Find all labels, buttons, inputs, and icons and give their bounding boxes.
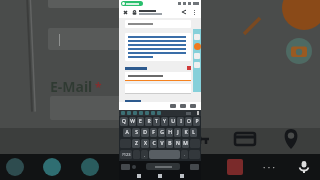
button[interactable]: P [193,117,200,126]
button[interactable] [146,163,180,170]
button[interactable]: R [145,117,152,126]
button[interactable]: Toolbar action [81,158,99,176]
staticText: * [95,79,102,95]
button[interactable]: Suggestion [157,111,161,115]
staticText: Y [163,118,166,125]
staticText: O [187,118,191,125]
staticText: E-Mail [50,77,93,96]
button[interactable]: Share [180,8,188,16]
staticText: W [130,118,135,125]
button[interactable]: Close [122,9,129,16]
button[interactable]: , [141,150,148,159]
staticText: J [177,129,179,136]
staticText: S [135,129,138,136]
button[interactable]: Toolbar action [6,158,24,176]
staticText: ?123 [122,152,131,157]
staticText: P [195,118,199,125]
button[interactable]: E [137,117,144,126]
staticText: L [192,129,195,136]
staticText: I [180,118,182,125]
button[interactable]: . [181,150,188,159]
staticText: B [168,140,172,147]
staticText: F [152,129,155,136]
button[interactable]: Suggestion [121,111,125,115]
button[interactable]: Payment methods [232,126,258,152]
staticText: X [144,140,147,147]
button[interactable]: Tool one [194,34,200,40]
staticText: R [147,118,151,125]
button[interactable]: Form navigation [190,104,196,108]
staticText: H [168,129,172,136]
button[interactable]: B [166,139,173,148]
staticText: T [155,118,158,125]
staticText: D [143,129,147,136]
button[interactable]: Form navigation [170,104,176,108]
staticText: Q [122,118,126,125]
button[interactable]: A [123,128,131,137]
staticText: N [176,140,180,147]
button[interactable]: Y [161,117,168,126]
button[interactable]: Toolbar action [43,158,61,176]
button[interactable]: Camera [190,164,199,170]
button[interactable]: G [158,128,165,137]
button[interactable]: X [141,139,149,148]
button[interactable]: Form navigation [180,104,186,108]
staticText: K [184,129,188,136]
staticText: V [160,140,164,147]
button[interactable]: Stop recording [121,164,130,170]
button[interactable]: D [141,128,149,137]
button[interactable]: More options [191,9,198,16]
button[interactable]: S [132,128,140,137]
staticText: U [171,118,175,125]
button[interactable]: J [174,128,181,137]
staticText: . [184,152,186,157]
button[interactable]: L [190,128,197,137]
button[interactable]: Voice input [294,157,314,177]
button[interactable]: N [174,139,181,148]
staticText: Z [135,140,138,147]
button[interactable]: C [150,139,157,148]
staticText: M [183,140,188,147]
button[interactable]: Space [149,150,180,159]
staticText: A [125,129,129,136]
staticText: E [139,118,142,125]
button[interactable]: M [182,139,189,148]
staticText: · · · [263,161,275,173]
button[interactable]: Tool three [194,62,200,68]
staticText: C [152,140,156,147]
button[interactable]: Suggestion [151,111,155,115]
button[interactable]: U [169,117,176,126]
button[interactable]: Q [120,117,128,126]
button[interactable]: H [166,128,173,137]
button[interactable]: Suggestion [139,111,143,115]
staticText: , [144,152,146,157]
button[interactable]: V [158,139,165,148]
button[interactable]: Tool two [194,53,200,59]
button[interactable]: K [182,128,189,137]
button[interactable]: ?123 [120,150,132,159]
button[interactable]: Z [132,139,140,148]
button[interactable] [125,20,191,28]
button[interactable]: F [150,128,157,137]
button[interactable]: O [185,117,192,126]
button[interactable]: Passwords [186,126,212,152]
button[interactable]: W [129,117,136,126]
button[interactable]: Suggestion [133,111,137,115]
button[interactable]: T [153,117,160,126]
button[interactable]: Addresses [278,126,304,152]
button[interactable] [125,72,191,80]
button[interactable]: Suggestion [127,111,131,115]
staticText: G [160,129,164,136]
button[interactable]: I [177,117,184,126]
button[interactable]: Record [194,43,201,50]
button[interactable]: Suggestion [145,111,149,115]
